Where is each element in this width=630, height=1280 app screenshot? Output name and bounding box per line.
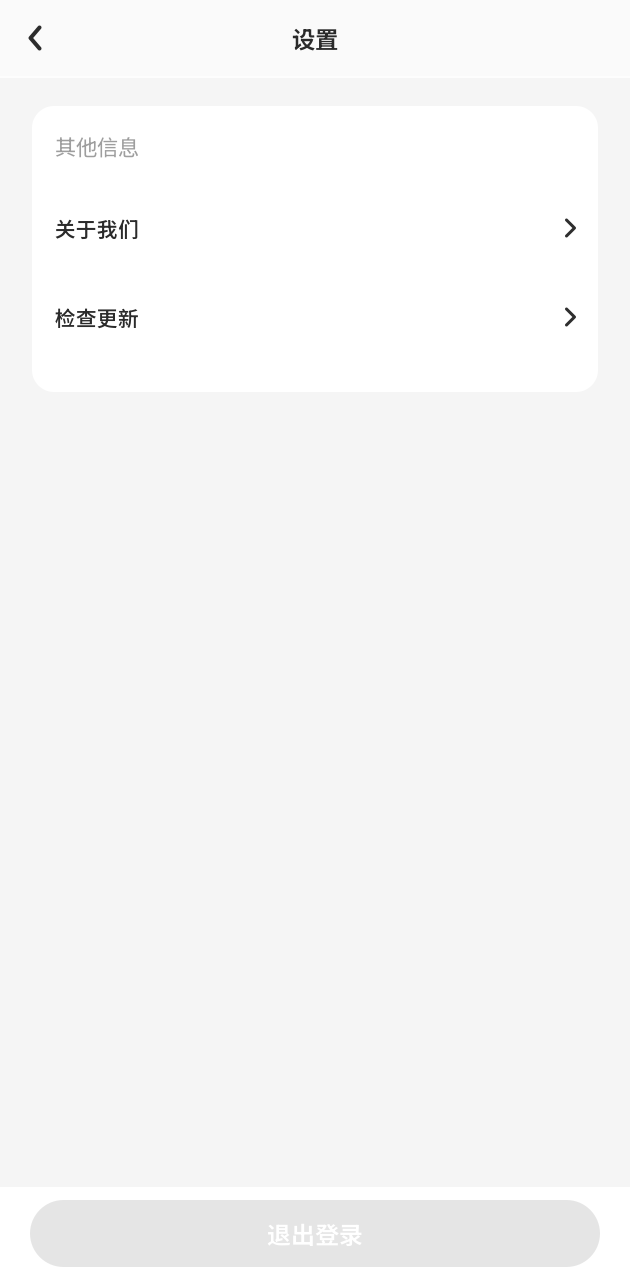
staticText: 退出登录 — [267, 1216, 363, 1251]
button[interactable]: 检查更新 — [32, 287, 598, 347]
button[interactable]: Back — [5, 8, 65, 68]
staticText: 设置 — [292, 21, 338, 55]
staticText: 检查更新 — [55, 302, 139, 332]
button[interactable]: 关于我们 — [32, 198, 598, 258]
staticText: 其他信息 — [55, 131, 139, 161]
button[interactable]: 退出登录 — [30, 1200, 600, 1267]
staticText: 关于我们 — [55, 213, 139, 243]
